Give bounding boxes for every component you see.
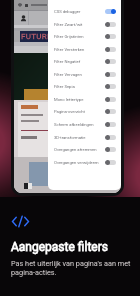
staticText: Filter Sepia xyxy=(54,84,105,89)
button[interactable]: Filter Vervagen xyxy=(48,68,121,81)
button[interactable]: Filter Versterken xyxy=(48,43,121,56)
staticText: FUTURE xyxy=(21,32,52,41)
staticText: Overgangen afremmen xyxy=(54,147,105,152)
staticText: Mono lettertype xyxy=(54,97,105,102)
staticText: Filter Zwart/wit xyxy=(54,22,105,27)
button[interactable]: Filter Sepia xyxy=(48,80,121,93)
staticText: Scherm afbeeldingen xyxy=(54,122,105,127)
staticText: Filter Grijstinten xyxy=(54,34,105,39)
button[interactable]: Scherm afbeeldingen xyxy=(48,118,121,131)
button[interactable]: Overgangen verwijderen xyxy=(48,156,121,169)
button[interactable]: Filter Zwart/wit xyxy=(48,18,121,31)
staticText: Filter Negatief xyxy=(54,59,105,64)
button[interactable]: 3D-transformatie xyxy=(48,131,121,144)
staticText: 3D-transformatie xyxy=(54,135,105,140)
staticText: Pagina-overzicht xyxy=(54,109,105,114)
button[interactable]: Pagina-overzicht xyxy=(48,105,121,118)
staticText: Overgangen verwijderen xyxy=(54,160,105,165)
button[interactable]: Mono lettertype xyxy=(48,93,121,106)
button[interactable]: CSS debugger xyxy=(48,5,121,18)
button[interactable]: Overgangen afremmen xyxy=(48,143,121,156)
staticText: Aangepaste filters xyxy=(11,240,108,254)
staticText: Filter Versterken xyxy=(54,47,105,52)
staticText: Pas het uiterlijk van pagina's aan met p… xyxy=(11,259,133,277)
staticText: CSS debugger xyxy=(54,9,105,14)
button[interactable]: Code xyxy=(12,216,29,227)
button[interactable]: Filter Negatief xyxy=(48,55,121,68)
button[interactable]: Filter Grijstinten xyxy=(48,30,121,43)
staticText: Filter Vervagen xyxy=(54,72,105,77)
